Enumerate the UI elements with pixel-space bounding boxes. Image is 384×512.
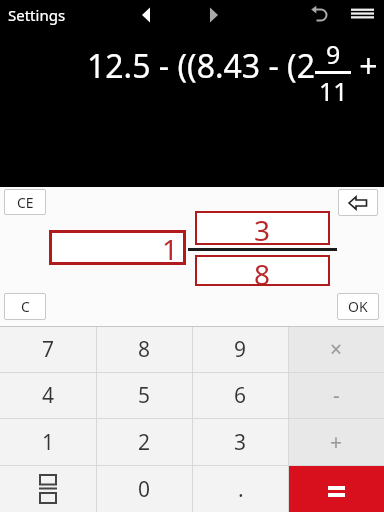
staticText: OK	[348, 297, 368, 316]
button[interactable]: 1	[0, 419, 96, 465]
staticText: -	[333, 381, 340, 410]
button[interactable]: 3	[195, 211, 330, 245]
button[interactable]: -	[289, 373, 384, 418]
staticText: C	[21, 297, 30, 316]
staticText: 0	[138, 475, 151, 504]
staticText: 1	[42, 428, 55, 457]
button[interactable]	[0, 466, 96, 512]
staticText: .	[238, 475, 244, 504]
button[interactable]: .	[193, 466, 288, 512]
staticText: 3	[254, 211, 271, 245]
button[interactable]: 9	[193, 327, 288, 372]
staticText: CE	[17, 193, 34, 212]
button[interactable]	[289, 466, 384, 512]
staticText: 9	[326, 37, 341, 71]
staticText: 6	[234, 381, 247, 410]
button[interactable]: +	[289, 419, 384, 465]
button[interactable]: 8	[97, 327, 192, 372]
staticText: 2	[138, 428, 151, 457]
button[interactable]: 1	[49, 230, 186, 265]
button[interactable]: C	[4, 293, 46, 320]
button[interactable]: 2	[97, 419, 192, 465]
button[interactable]: 3	[193, 419, 288, 465]
staticText: +	[330, 428, 343, 457]
staticText: 8	[254, 255, 271, 286]
button[interactable]: Settings	[0, 5, 66, 25]
staticText: 3	[234, 428, 247, 457]
staticText: 4	[42, 381, 55, 410]
staticText: 9	[234, 335, 247, 364]
button[interactable]: 6	[193, 373, 288, 418]
staticText: 11	[319, 74, 348, 108]
staticText: +	[351, 44, 378, 88]
staticText: ×	[330, 335, 343, 364]
button[interactable]: CE	[4, 189, 46, 215]
button[interactable]	[134, 3, 158, 27]
button[interactable]	[338, 189, 378, 216]
staticText: 12.5 - ((8.43 - (2	[87, 44, 315, 88]
button[interactable]: OK	[337, 293, 379, 320]
staticText: 7	[42, 335, 55, 364]
staticText: 8	[138, 335, 151, 364]
staticText: 1	[162, 230, 179, 265]
button[interactable]	[306, 3, 330, 27]
button[interactable]: 8	[195, 255, 330, 286]
staticText: 5	[138, 381, 151, 410]
button[interactable]: 7	[0, 327, 96, 372]
button[interactable]	[347, 3, 377, 27]
staticText: Settings	[8, 5, 66, 25]
button[interactable]: ×	[289, 327, 384, 372]
button[interactable]: 4	[0, 373, 96, 418]
button[interactable]: 5	[97, 373, 192, 418]
button[interactable]	[202, 3, 226, 27]
button[interactable]: 0	[97, 466, 192, 512]
